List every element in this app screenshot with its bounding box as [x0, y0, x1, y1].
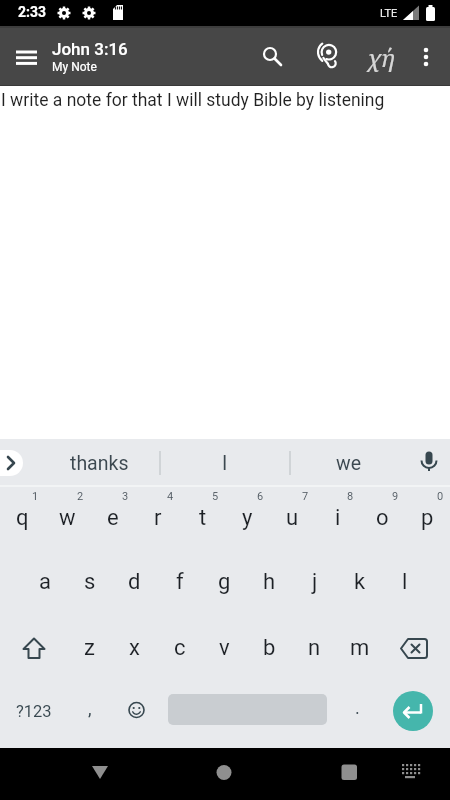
staticText: o	[376, 505, 389, 531]
staticText: .	[355, 697, 360, 718]
staticText: 6	[257, 490, 264, 503]
staticText: 3	[122, 490, 129, 503]
button[interactable]	[7, 36, 47, 76]
staticText: w	[59, 505, 76, 531]
staticText: h	[263, 569, 276, 595]
staticText: 1	[32, 490, 39, 503]
button[interactable]: b	[247, 615, 292, 680]
button[interactable]	[408, 443, 448, 483]
button[interactable]: n	[292, 615, 337, 680]
button[interactable]: m	[337, 615, 382, 680]
button[interactable]	[390, 753, 430, 793]
button[interactable]: d	[112, 549, 157, 614]
staticText: b	[263, 635, 276, 661]
staticText: χή	[368, 42, 395, 73]
button[interactable]: z	[67, 615, 112, 680]
button[interactable]: s	[67, 549, 112, 614]
button[interactable]: thanks	[40, 439, 158, 487]
staticText: 8	[347, 490, 354, 503]
button[interactable]	[0, 617, 67, 682]
button[interactable]: 9	[360, 485, 405, 550]
staticText: t	[199, 505, 207, 531]
staticText: n	[308, 635, 321, 661]
button[interactable]: I	[162, 439, 287, 487]
button[interactable]	[406, 37, 446, 77]
button[interactable]: a	[22, 549, 67, 614]
button[interactable]: 6	[225, 485, 270, 550]
staticText: d	[128, 569, 141, 595]
staticText: i	[335, 505, 341, 531]
button[interactable]: 5	[180, 485, 225, 550]
staticText: j	[312, 569, 318, 595]
button[interactable]: v	[202, 615, 247, 680]
staticText: ,	[88, 698, 92, 719]
button[interactable]: l	[382, 549, 427, 614]
button[interactable]: f	[157, 549, 202, 614]
staticText: u	[286, 505, 299, 531]
button[interactable]	[112, 682, 157, 744]
button[interactable]: χή	[361, 37, 401, 77]
button[interactable]: we	[291, 439, 406, 487]
button[interactable]: 7	[270, 485, 315, 550]
staticText: m	[350, 635, 370, 661]
staticText: r	[154, 505, 162, 531]
staticText: k	[354, 569, 366, 595]
staticText: x	[129, 635, 140, 661]
staticText: 7	[302, 490, 309, 503]
button[interactable]: h	[247, 549, 292, 614]
button[interactable]: 4	[135, 485, 180, 550]
staticText: p	[421, 505, 434, 531]
button[interactable]	[204, 753, 244, 793]
staticText: 0	[437, 490, 444, 503]
button[interactable]: k	[337, 549, 382, 614]
button[interactable]: .	[332, 680, 382, 742]
button[interactable]	[80, 753, 120, 793]
staticText: LTE	[380, 7, 398, 20]
button[interactable]: 0	[405, 485, 450, 550]
staticText: z	[84, 635, 95, 661]
staticText: 2:33	[18, 4, 47, 20]
button[interactable]: 8	[315, 485, 360, 550]
button[interactable]: c	[157, 615, 202, 680]
button[interactable]: g	[202, 549, 247, 614]
button[interactable]: 3	[90, 485, 135, 550]
button[interactable]	[305, 37, 345, 77]
staticText: a	[39, 569, 51, 595]
staticText: q	[16, 505, 29, 531]
button[interactable]	[393, 691, 433, 731]
button[interactable]	[383, 617, 450, 682]
button[interactable]	[329, 753, 369, 793]
button[interactable]: x	[112, 615, 157, 680]
staticText: l	[402, 569, 408, 595]
staticText: e	[107, 505, 119, 531]
staticText: ?123	[16, 702, 52, 721]
staticText: v	[219, 635, 230, 661]
button[interactable]: ,	[67, 680, 112, 742]
staticText: My Note	[52, 60, 97, 74]
staticText: s	[84, 569, 96, 595]
staticText: g	[218, 569, 231, 595]
button[interactable]: ?123	[0, 680, 67, 742]
button[interactable]	[0, 450, 23, 476]
staticText: I write a note for that I will study Bib…	[1, 90, 385, 111]
button[interactable]: j	[292, 549, 337, 614]
staticText: 2	[77, 490, 84, 503]
staticText: I	[222, 452, 228, 475]
button[interactable]	[251, 37, 291, 77]
staticText: c	[174, 635, 186, 661]
staticText: y	[242, 505, 253, 531]
staticText: f	[176, 569, 184, 595]
staticText: 4	[167, 490, 174, 503]
staticText: we	[336, 452, 361, 475]
button[interactable]: 1	[0, 485, 45, 550]
staticText: thanks	[70, 452, 129, 475]
staticText: 5	[212, 490, 219, 503]
button[interactable]: 2	[45, 485, 90, 550]
staticText: John 3:16	[52, 39, 128, 59]
staticText: 9	[392, 490, 399, 503]
